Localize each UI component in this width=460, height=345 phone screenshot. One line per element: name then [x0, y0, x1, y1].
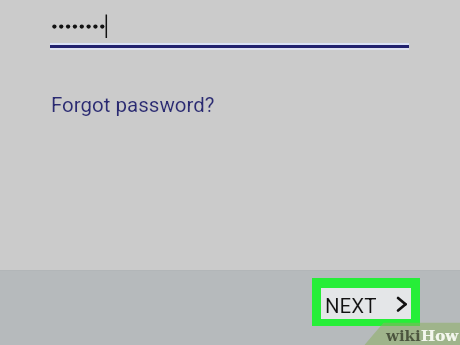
button[interactable]: NEXT	[321, 288, 411, 319]
staticText: NEXT	[325, 294, 377, 318]
staticText: wiki	[386, 327, 421, 345]
button[interactable]: Password	[46, 10, 412, 44]
button[interactable]: Forgot password?	[51, 93, 215, 117]
staticText: How	[421, 327, 459, 345]
staticText: Forgot password?	[51, 93, 215, 117]
